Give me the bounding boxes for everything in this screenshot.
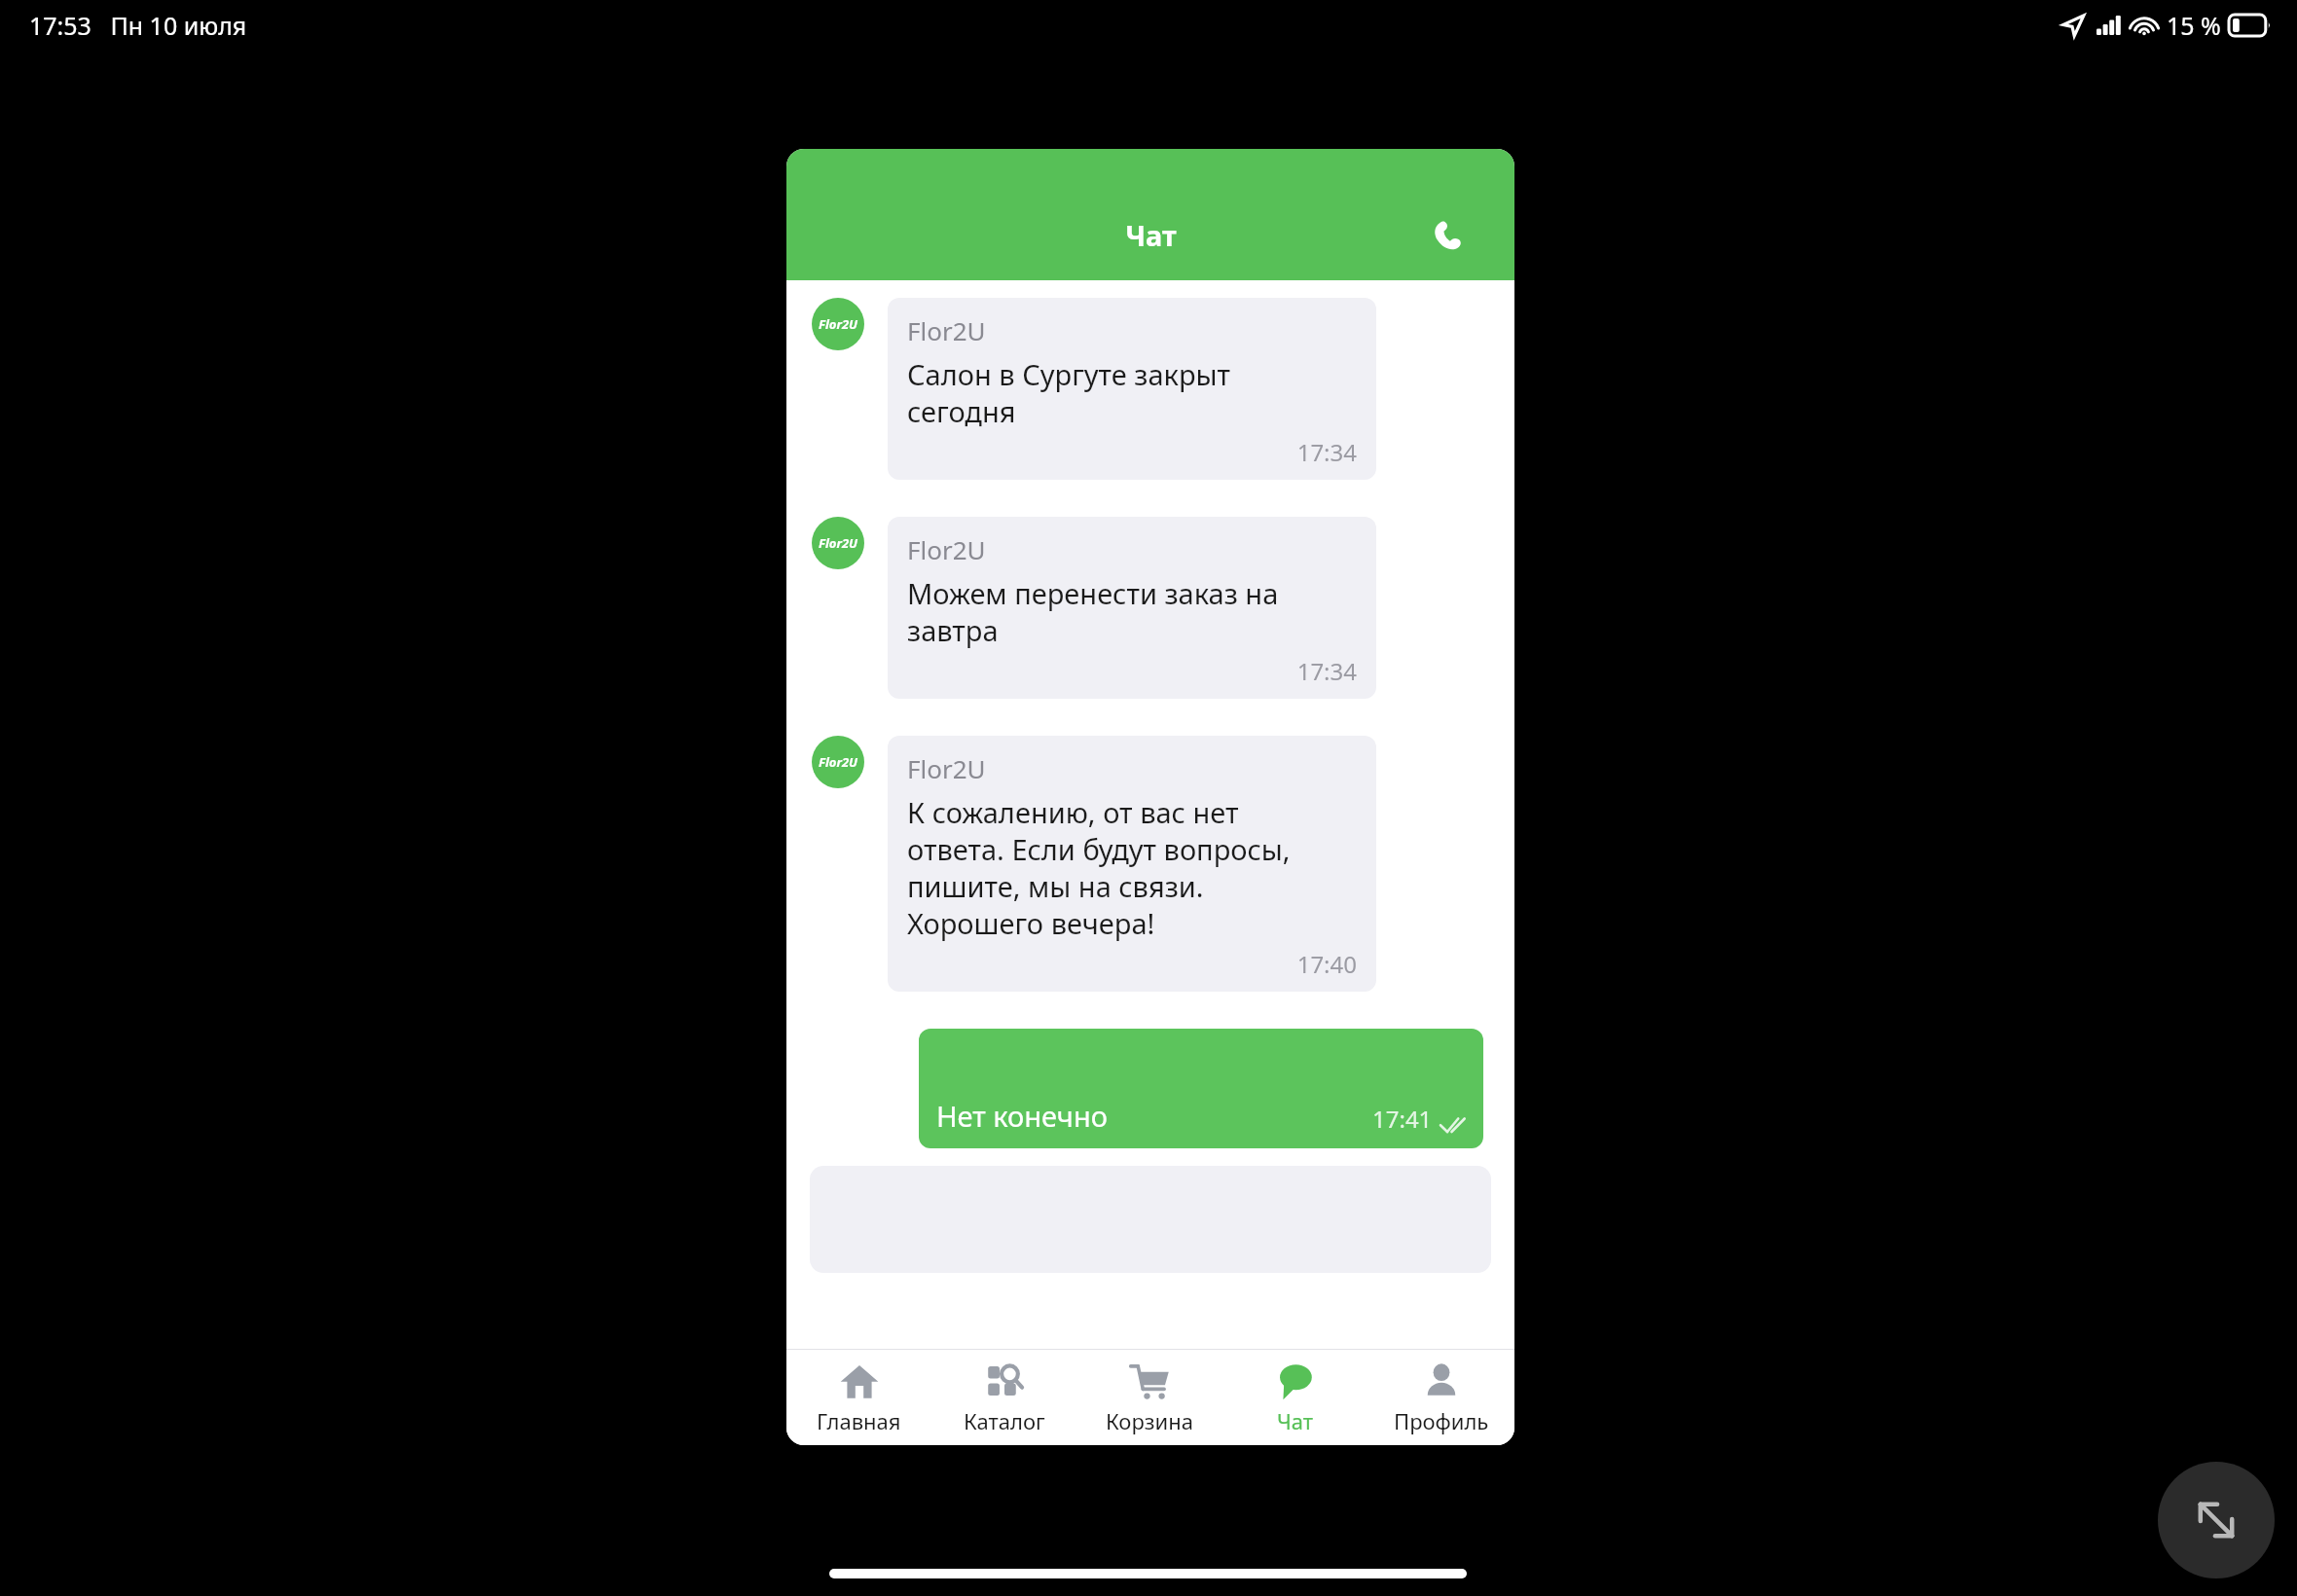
staticText: Корзина	[1106, 1406, 1193, 1435]
staticText: Чат	[1277, 1406, 1314, 1435]
staticText: Flor2U	[819, 315, 858, 333]
staticText: 17:53 Пн 10 июля	[29, 9, 247, 42]
staticText: 17:34	[907, 655, 1357, 687]
staticText: Flor2U	[819, 534, 858, 552]
staticText: Flor2U	[819, 753, 858, 771]
button[interactable]: Нет конечно	[919, 1029, 1483, 1148]
staticText: Профиль	[1394, 1406, 1489, 1435]
staticText: Каталог	[964, 1406, 1045, 1435]
staticText: 15 %	[2167, 9, 2221, 42]
button[interactable]: Flor2U	[888, 736, 1376, 992]
button[interactable]: Главная	[786, 1350, 931, 1445]
staticText: 17:40	[907, 948, 1357, 980]
button[interactable]: Resize	[2158, 1462, 2275, 1578]
button[interactable]: Каталог	[931, 1350, 1076, 1445]
staticText: Чат	[1125, 216, 1177, 254]
staticText: 17:34	[907, 436, 1357, 468]
staticText: Главная	[817, 1406, 901, 1435]
staticText: Салон в Сургуте закрыт сегодня	[907, 355, 1231, 430]
staticText: Можем перенести заказ на завтра	[907, 574, 1279, 649]
staticText: Flor2U	[907, 313, 986, 347]
button[interactable]: Call	[1425, 212, 1472, 259]
button[interactable]: Профиль	[1368, 1350, 1514, 1445]
staticText: Нет конечно	[936, 1097, 1108, 1135]
button[interactable]: Чат	[1222, 1350, 1368, 1445]
button[interactable]: Корзина	[1076, 1350, 1222, 1445]
button[interactable]: Flor2U	[888, 298, 1376, 480]
staticText: К сожалению, от вас нет ответа. Если буд…	[907, 793, 1291, 942]
staticText: Flor2U	[907, 532, 986, 566]
staticText: 17:41	[1372, 1103, 1433, 1135]
button[interactable]: Flor2U	[888, 517, 1376, 699]
staticText: Flor2U	[907, 751, 986, 785]
